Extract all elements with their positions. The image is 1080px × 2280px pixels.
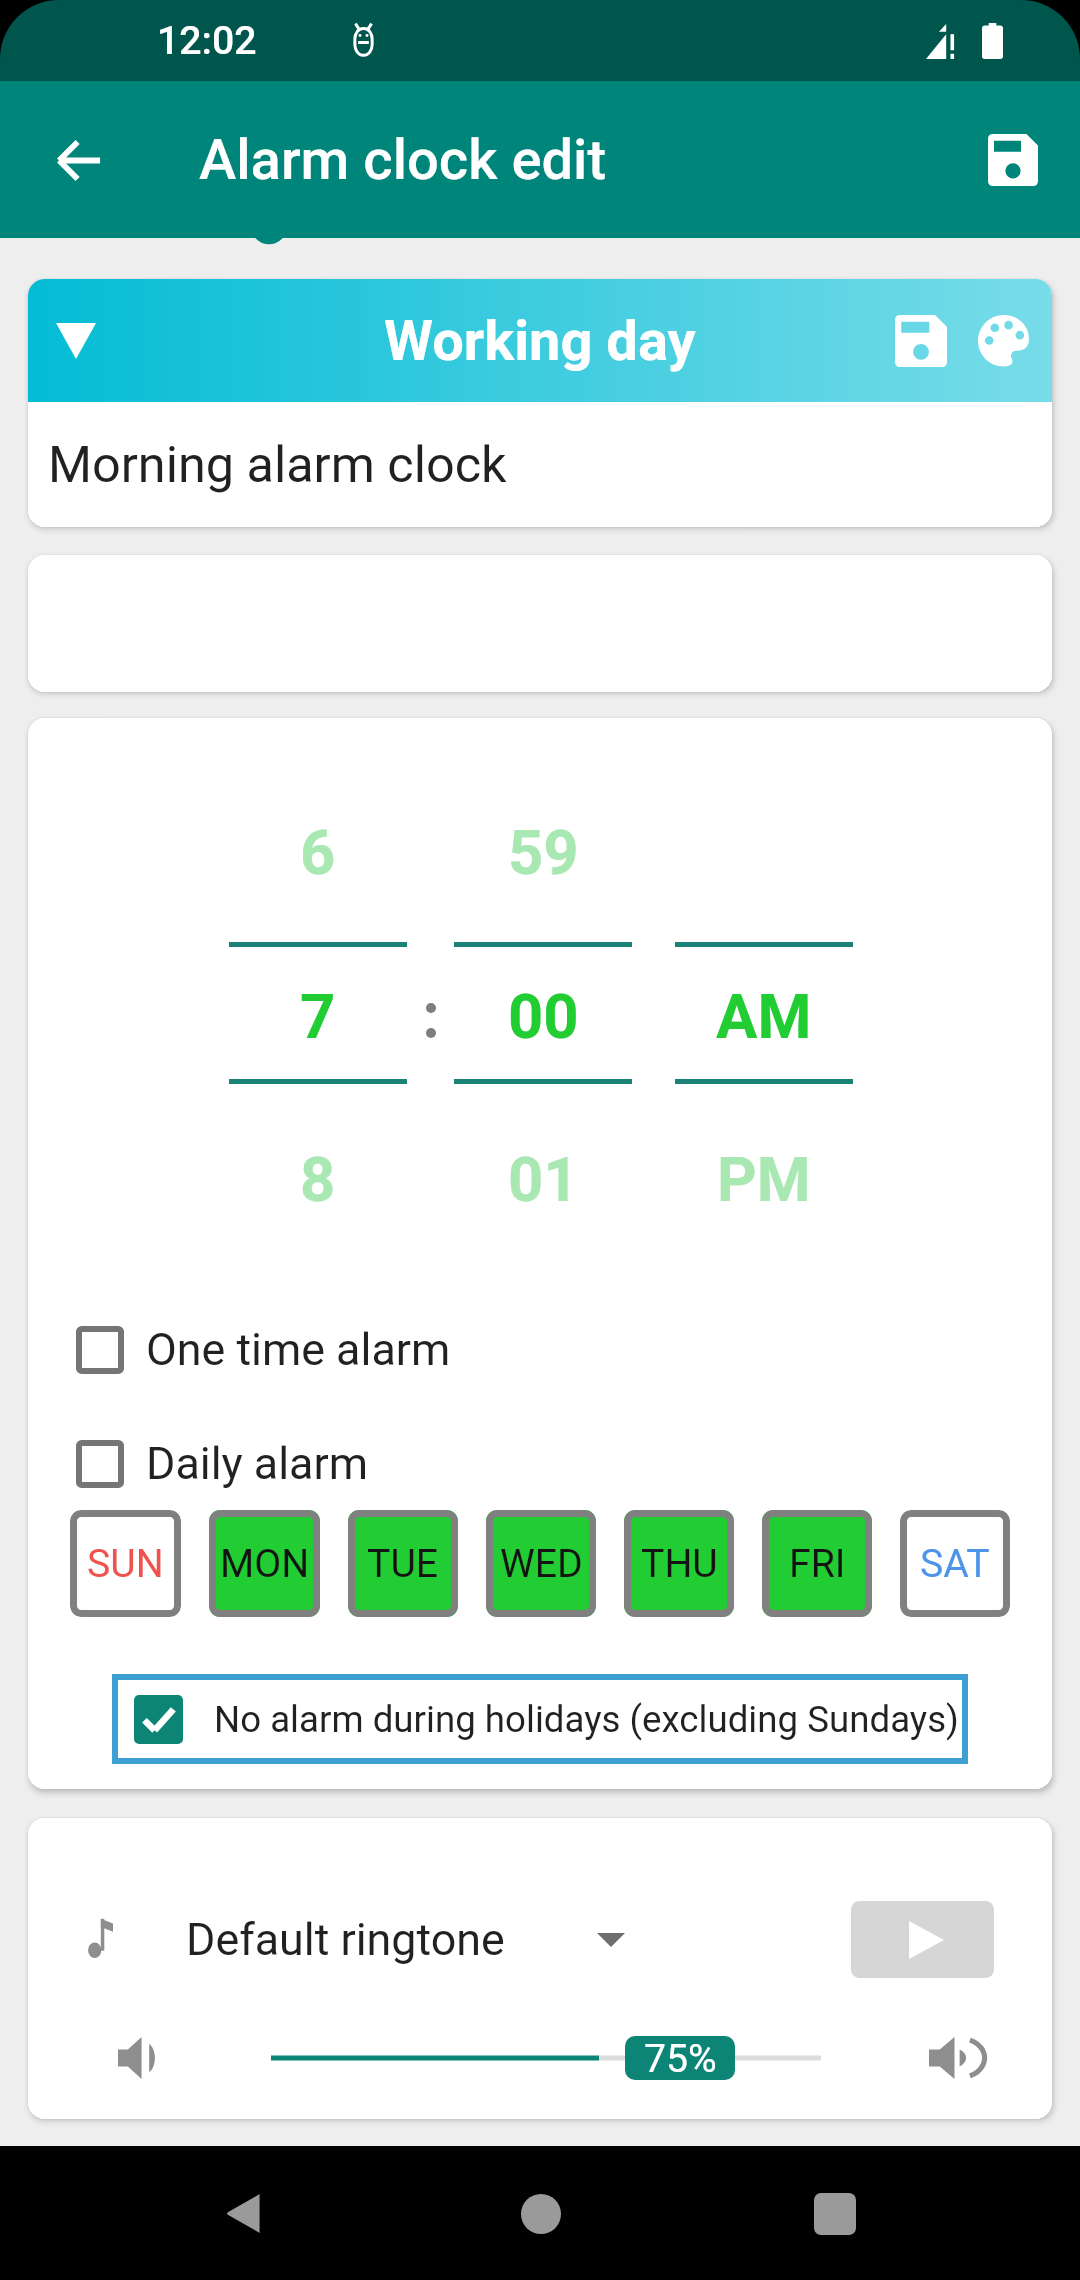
staticText: FRI	[789, 1541, 846, 1587]
staticText: PM	[717, 1144, 811, 1216]
staticText: WED	[500, 1541, 583, 1587]
button[interactable]: Working day	[28, 279, 1052, 402]
staticText: 59	[508, 817, 579, 889]
button[interactable]: 8	[229, 1084, 407, 1241]
button[interactable]: Recent apps	[773, 2152, 896, 2275]
button[interactable]: 6	[229, 785, 407, 942]
button[interactable]: Navigate up	[11, 93, 145, 227]
button[interactable]: Select ringtone	[577, 1906, 644, 1973]
button[interactable]: SUN	[70, 1510, 181, 1617]
staticText: 6	[300, 817, 336, 889]
button[interactable]: 01	[454, 1084, 632, 1241]
button[interactable]: WED	[486, 1510, 596, 1617]
staticText: Working day	[384, 308, 696, 374]
staticText: TUE	[367, 1541, 439, 1587]
staticText: No alarm during holidays (excluding Sund…	[214, 1698, 959, 1741]
button[interactable]: TUE	[348, 1510, 458, 1617]
button[interactable]: MON	[209, 1510, 320, 1617]
button[interactable]: Play ringtone	[851, 1901, 994, 1978]
button[interactable]: 7	[229, 947, 407, 1079]
button[interactable]: Daily alarm	[28, 1437, 1052, 1490]
button[interactable]: Choose profile	[28, 293, 123, 388]
button[interactable]: SAT	[900, 1510, 1010, 1617]
staticText: Default ringtone	[186, 1913, 505, 1966]
staticText: MON	[220, 1541, 310, 1587]
staticText: Daily alarm	[146, 1437, 368, 1490]
button[interactable]: AM	[675, 947, 853, 1079]
button[interactable]: Home	[479, 2152, 602, 2275]
staticText: 01	[508, 1144, 579, 1216]
staticText: 8	[300, 1144, 336, 1216]
staticText: Alarm clock edit	[199, 127, 607, 193]
staticText: One time alarm	[146, 1323, 451, 1376]
staticText: SAT	[920, 1541, 990, 1587]
staticText: 75%	[644, 2036, 717, 2080]
button[interactable]: FRI	[762, 1510, 872, 1617]
button[interactable]: 75%	[625, 2036, 735, 2080]
staticText: Morning alarm clock	[48, 435, 507, 494]
staticText: 7	[300, 981, 336, 1053]
button[interactable]: 59	[454, 785, 632, 942]
button[interactable]: No alarm during holidays (excluding Sund…	[112, 1674, 968, 1764]
staticText: THU	[641, 1541, 718, 1587]
button[interactable]: One time alarm	[28, 1323, 1052, 1376]
button[interactable]: Change colour	[962, 293, 1045, 388]
staticText: SUN	[87, 1541, 164, 1587]
button[interactable]: 00	[454, 947, 632, 1079]
button[interactable]: THU	[624, 1510, 734, 1617]
button[interactable]: Back	[182, 2152, 305, 2275]
staticText: 00	[508, 981, 579, 1053]
button[interactable]: Morning alarm clock	[28, 402, 1052, 527]
button[interactable]: Save	[946, 93, 1080, 227]
button[interactable]: Default ringtone	[186, 1913, 505, 1966]
staticText: AM	[716, 981, 812, 1053]
button[interactable]: PM	[675, 1084, 853, 1241]
button[interactable]: Save profile	[879, 293, 962, 388]
staticText: 12:02	[157, 18, 257, 64]
